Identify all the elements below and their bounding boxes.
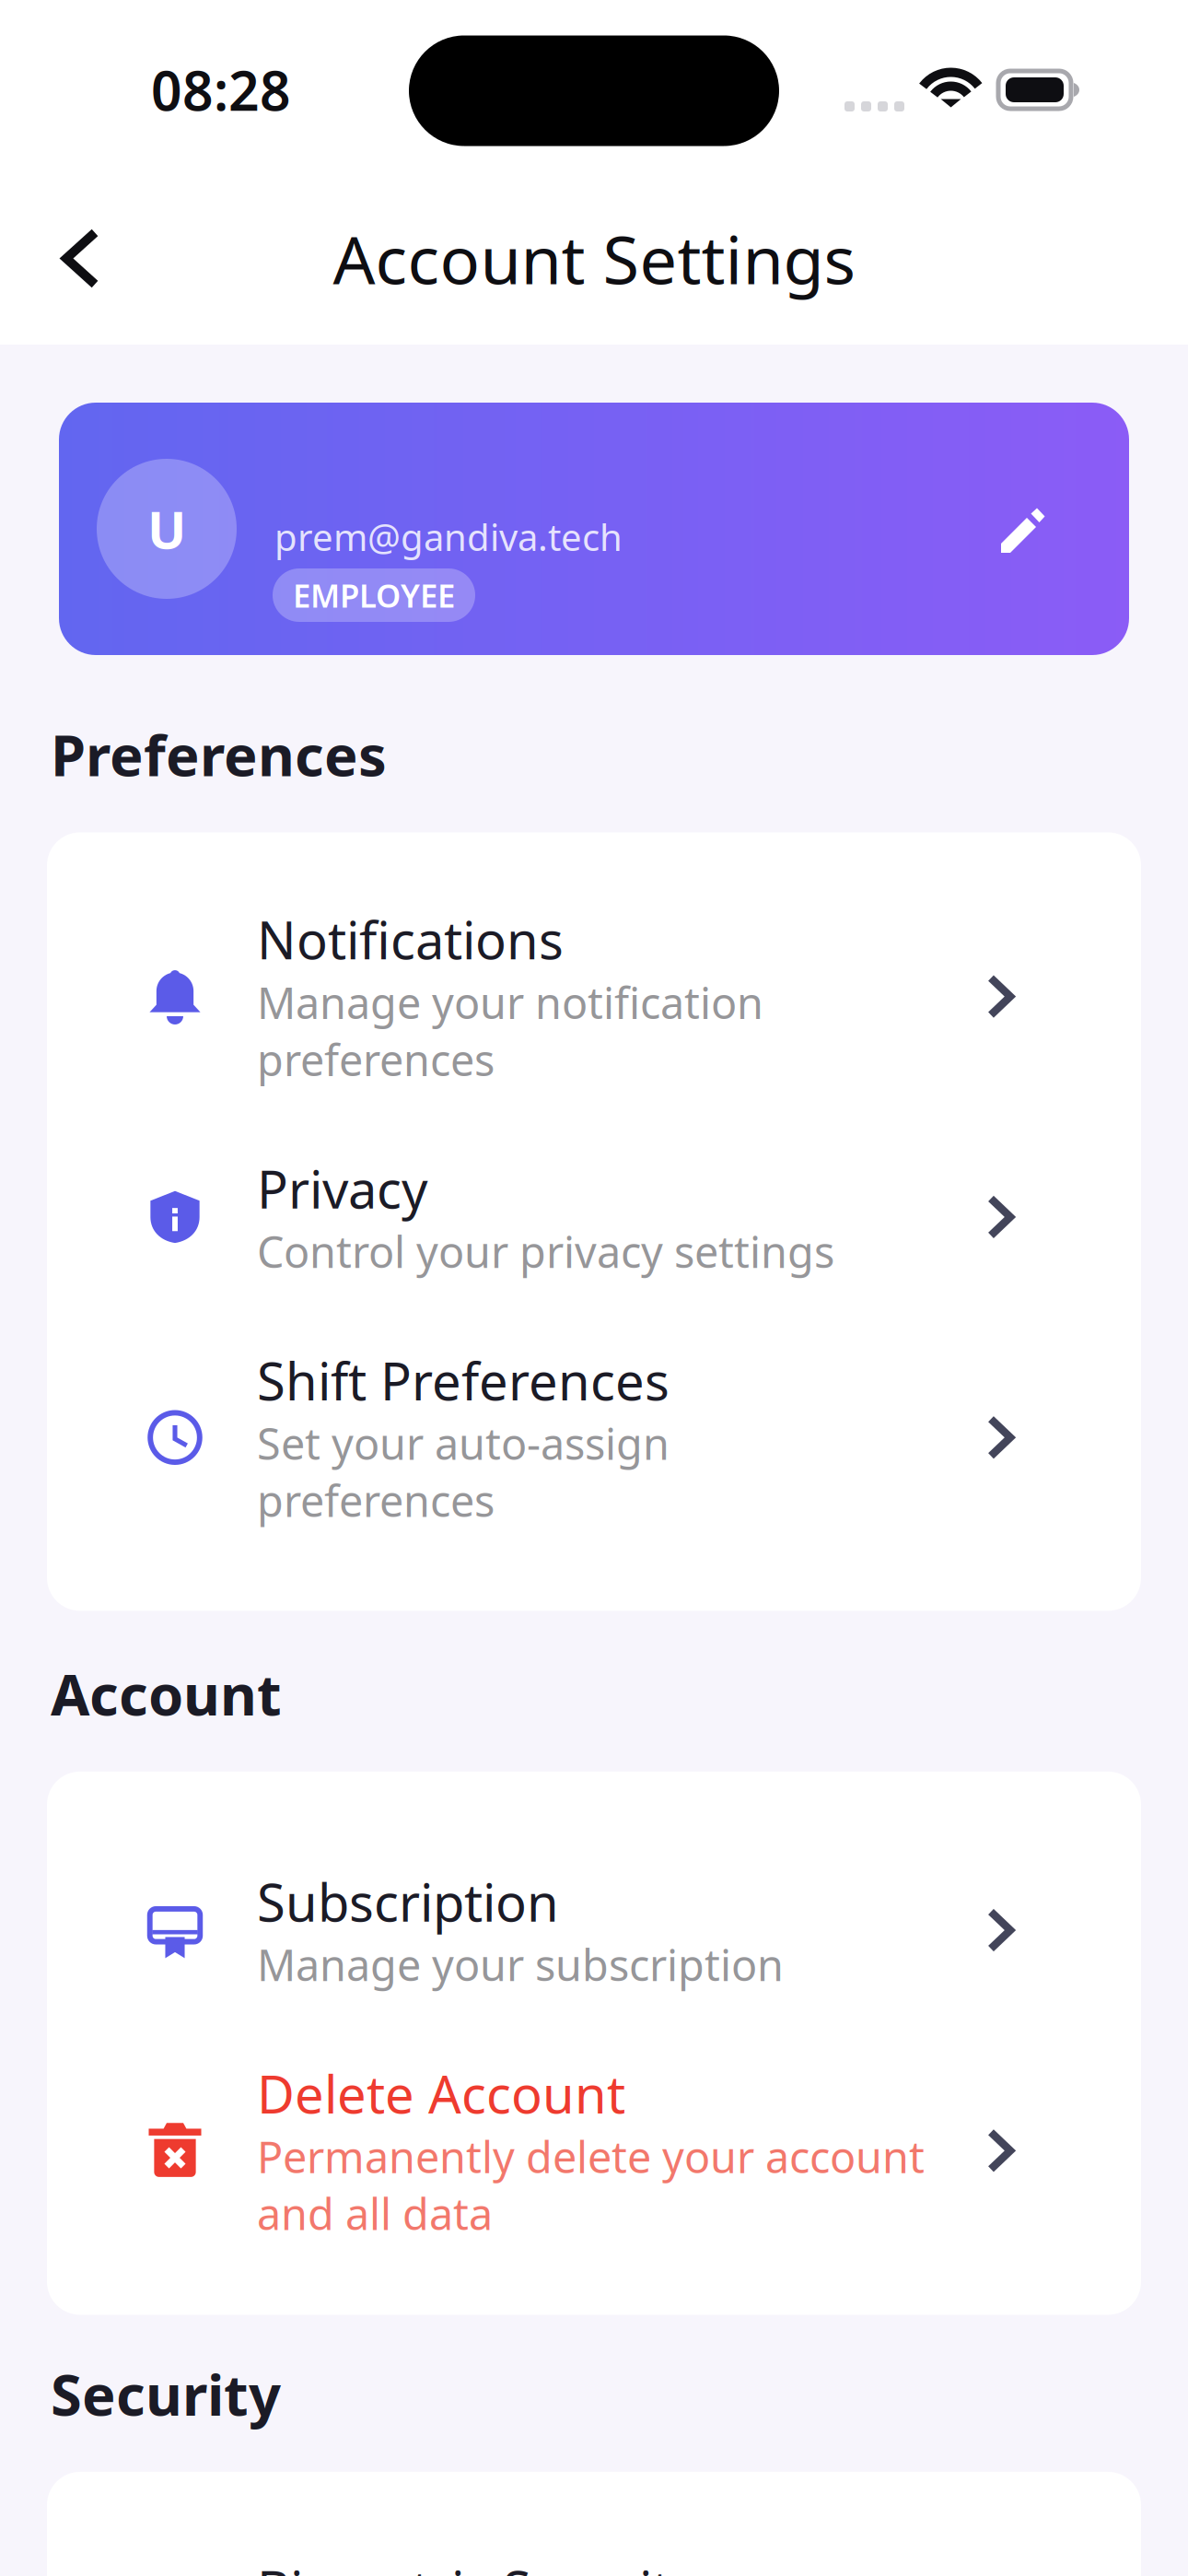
button[interactable]: Subscription [47,1834,1141,2026]
staticText: Security [51,2356,281,2431]
staticText: prem@gandiva.tech [274,512,623,561]
staticText: Preferences [51,717,387,792]
staticText: Account Settings [333,214,855,302]
staticText: 08:28 [151,54,291,126]
button[interactable]: Privacy [47,1121,1141,1313]
button[interactable]: Biometric Security [47,2522,1141,2576]
staticText: Manage your notification preferences [257,974,763,1088]
staticText: EMPLOYEE [293,574,455,616]
button[interactable]: Notifications [47,872,1141,1121]
button[interactable]: Shift Preferences [47,1313,1141,1562]
staticText: Privacy [257,1154,428,1223]
staticText: Subscription [257,1867,559,1936]
staticText: Manage your subscription [257,1936,784,1993]
button[interactable]: Edit profile [979,487,1066,574]
staticText: Shift Preferences [257,1346,670,1415]
staticText: Permanently delete your account and all … [257,2128,925,2242]
button[interactable]: Back [0,206,131,311]
staticText: Notifications [257,905,564,974]
staticText: Delete Account [257,2059,625,2128]
button[interactable]: Delete Account [47,2026,1141,2275]
staticText: U [147,495,186,563]
staticText: Set your auto-assign preferences [257,1415,670,1529]
staticText: Biometric Security [257,2555,697,2576]
staticText: Account [51,1656,282,1731]
staticText: Control your privacy settings [257,1223,834,1280]
